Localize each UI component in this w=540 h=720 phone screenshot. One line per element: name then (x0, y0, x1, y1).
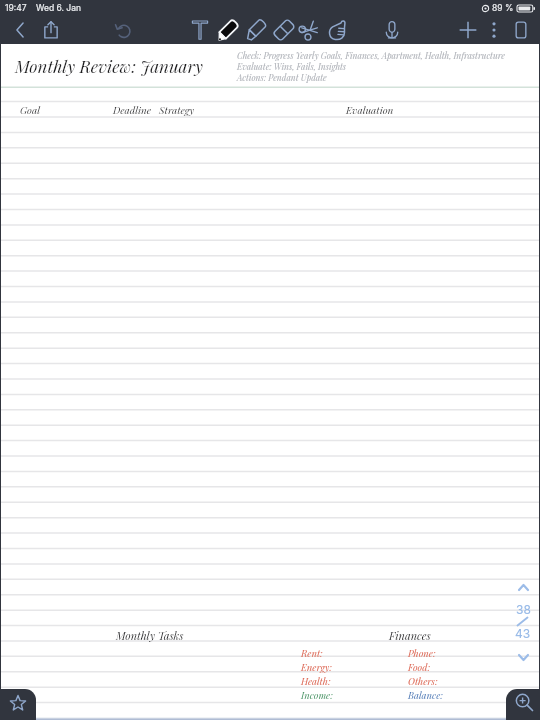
staticText: Health: (301, 675, 331, 688)
button[interactable]: Bookmark (0, 689, 36, 720)
button[interactable]: Next page (511, 645, 535, 669)
button[interactable]: Add (455, 17, 481, 43)
button[interactable]: Zoom in (506, 689, 540, 720)
button[interactable]: Cut (295, 17, 321, 43)
staticText: Energy: (301, 661, 332, 674)
staticText: Balance: (408, 689, 443, 702)
button[interactable]: Highlighter (243, 17, 269, 43)
staticText: Evaluate: Wins, Fails, Insights (237, 61, 347, 72)
staticText: Actions: Pendant Update (237, 72, 327, 83)
button[interactable]: Pages (508, 17, 534, 43)
button[interactable]: More options (481, 17, 507, 43)
staticText: Monthly Review: January (15, 55, 203, 78)
staticText: Rent: (301, 647, 323, 660)
staticText: Goal (20, 103, 40, 116)
button[interactable]: Back (7, 17, 33, 43)
staticText: Food: (408, 661, 431, 674)
button[interactable]: Undo (110, 17, 136, 43)
staticText: Strategy (159, 103, 195, 116)
button[interactable]: Previous page (511, 575, 535, 599)
staticText: Check: Progress Yearly Goals, Finances, … (237, 50, 505, 61)
staticText: Deadline (113, 103, 152, 116)
staticText: Income: (301, 689, 333, 702)
staticText: 19:47 (5, 3, 27, 13)
button[interactable]: Text tool (187, 17, 213, 43)
staticText: Others: (408, 675, 438, 688)
staticText: 43 (515, 626, 531, 641)
staticText: Evaluation (346, 103, 394, 116)
button[interactable]: Share (38, 17, 64, 43)
staticText: 38 (516, 602, 531, 617)
button[interactable]: Pen tool (215, 17, 241, 43)
staticText: Wed 6. Jan (36, 3, 81, 13)
staticText: 89 % (492, 3, 514, 13)
staticText: Phone: (408, 647, 436, 660)
staticText: Finances (389, 628, 431, 643)
button[interactable]: Hand (324, 17, 350, 43)
button[interactable]: Microphone (379, 17, 405, 43)
staticText: Monthly Tasks (116, 628, 184, 643)
button[interactable]: Eraser (271, 17, 297, 43)
